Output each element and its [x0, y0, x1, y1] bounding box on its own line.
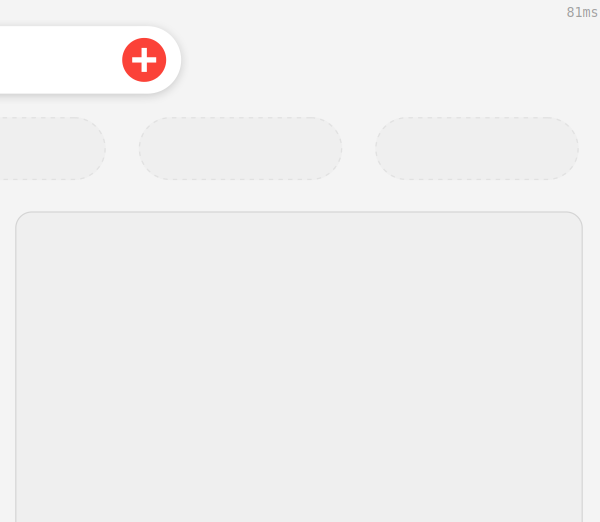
button[interactable]: New chat — [122, 38, 166, 82]
staticText: 81ms — [567, 5, 599, 20]
